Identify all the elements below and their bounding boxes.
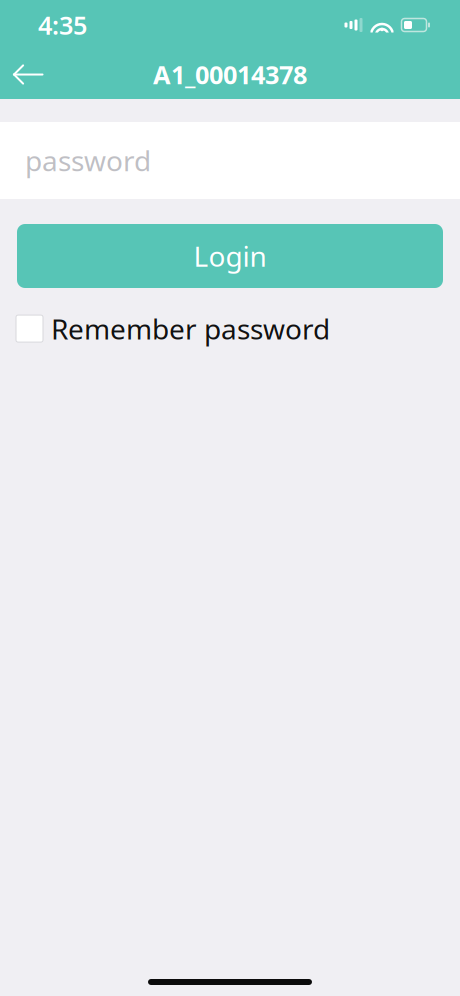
button[interactable]: Remember password — [0, 288, 460, 357]
staticText: Remember password — [51, 310, 330, 347]
staticText: Login — [193, 237, 266, 275]
staticText: password — [25, 142, 151, 179]
staticText: A1_00014378 — [153, 58, 307, 91]
button[interactable]: Login — [17, 224, 443, 288]
button[interactable]: Back — [0, 50, 54, 99]
staticText: 4:35 — [38, 8, 87, 42]
